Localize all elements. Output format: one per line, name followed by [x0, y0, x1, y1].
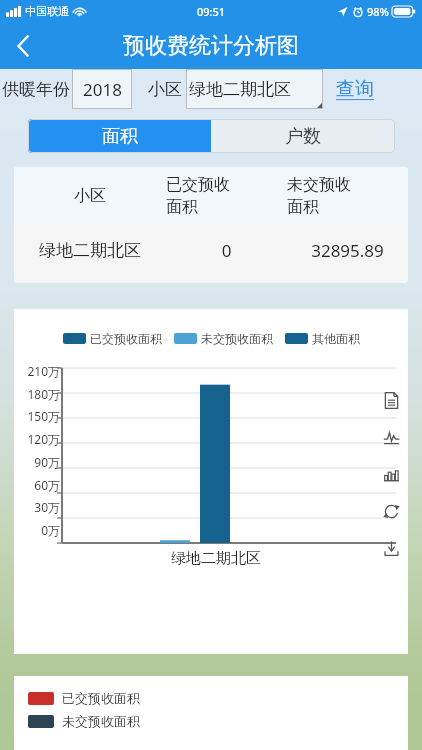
staticText: 180万	[14, 386, 60, 402]
staticText: 未交预收面积	[201, 331, 273, 346]
button[interactable]: 折线图	[380, 426, 402, 448]
button[interactable]: 其他面积	[285, 331, 360, 346]
button[interactable]: 柱状图	[380, 463, 402, 485]
staticText: 98%	[367, 4, 389, 19]
button[interactable]: 已交预收面积	[63, 331, 162, 346]
staticText: 中国联通	[25, 4, 69, 18]
staticText: 供暖年份	[2, 79, 70, 100]
staticText: 小区	[14, 186, 166, 206]
staticText: 30万	[14, 499, 60, 515]
button[interactable]: 绿地二期北区	[186, 69, 323, 109]
button[interactable]: 刷新	[380, 500, 402, 522]
staticText: 已交预收面积	[62, 690, 140, 706]
button[interactable]: 绿地二期北区	[14, 225, 408, 275]
staticText: 0万	[14, 522, 60, 538]
staticText: 查询	[336, 77, 374, 101]
staticText: 绿地二期北区	[24, 549, 408, 568]
staticText: 绿地二期北区	[189, 79, 291, 100]
button[interactable]: 户数	[211, 119, 395, 153]
staticText: 已交预收面积	[90, 331, 162, 346]
staticText: 2018	[83, 78, 122, 101]
staticText: 预收费统计分析图	[123, 32, 299, 60]
staticText: 未交预收面积	[62, 713, 140, 729]
staticText: 120万	[14, 431, 60, 447]
staticText: 150万	[14, 408, 60, 424]
staticText: 未交预收 面积	[287, 175, 408, 217]
button[interactable]: 查询	[334, 75, 376, 103]
button[interactable]: 返回	[0, 23, 46, 69]
staticText: 09:51	[197, 4, 226, 19]
button[interactable]: 未交预收面积	[28, 713, 140, 729]
staticText: 32895.89	[287, 239, 408, 262]
button[interactable]: 文档	[380, 389, 402, 411]
staticText: 60万	[14, 477, 60, 493]
staticText: 小区	[148, 79, 182, 100]
button[interactable]: 已交预收面积	[28, 690, 140, 706]
staticText: 户数	[285, 125, 321, 148]
button[interactable]: 下载	[380, 537, 402, 559]
staticText: 面积	[102, 125, 138, 148]
staticText: 210万	[14, 363, 60, 379]
staticText: 90万	[14, 454, 60, 470]
staticText: 绿地二期北区	[14, 240, 166, 261]
button[interactable]: 未交预收面积	[174, 331, 273, 346]
staticText: 0	[166, 239, 287, 262]
button[interactable]: 面积	[28, 119, 211, 153]
button[interactable]: 2018	[72, 69, 132, 109]
staticText: 已交预收 面积	[166, 175, 287, 217]
staticText: 其他面积	[312, 331, 360, 346]
